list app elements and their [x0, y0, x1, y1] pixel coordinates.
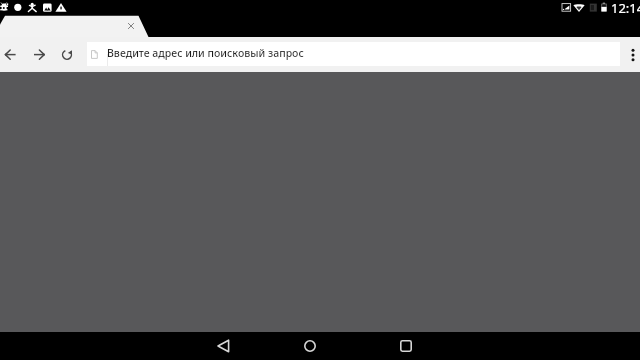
button[interactable]: Back	[3, 37, 19, 72]
button[interactable]: Введите адрес или поисковый запрос	[87, 42, 620, 66]
button[interactable]: Forward	[32, 37, 48, 72]
button[interactable]: Close tab	[123, 18, 139, 34]
staticText: Введите адрес или поисковый запрос	[107, 46, 304, 60]
staticText: 12:14	[611, 0, 640, 17]
button[interactable]: Tab	[0, 16, 148, 37]
button[interactable]: Recent apps	[392, 332, 420, 360]
button[interactable]: Reload	[59, 37, 75, 72]
button[interactable]: More options	[625, 37, 640, 72]
button[interactable]: Back	[210, 332, 238, 360]
button[interactable]: Home	[296, 332, 324, 360]
